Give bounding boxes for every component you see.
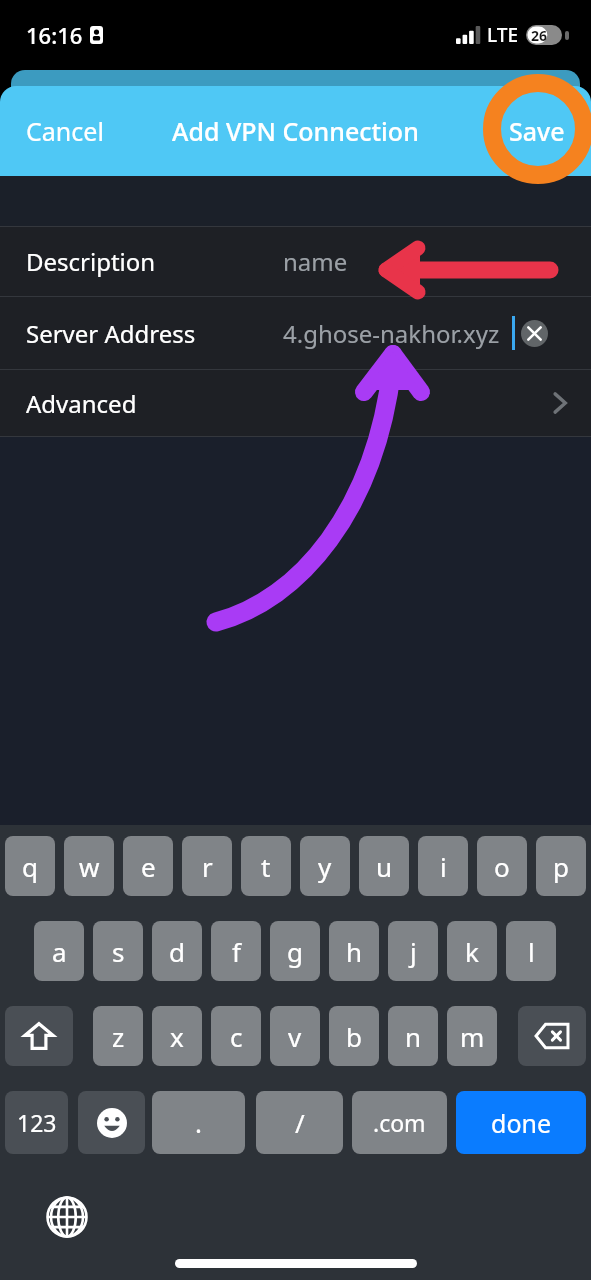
button[interactable]: p [536,836,586,896]
staticText: z [112,1019,125,1054]
staticText: Add VPN Connection [172,114,419,148]
button[interactable]: f [211,921,261,981]
staticText: u [376,849,393,884]
button[interactable]: g [270,921,320,981]
staticText: s [112,934,125,969]
button[interactable]: u [359,836,409,896]
staticText: d [169,934,185,969]
staticText: l [528,934,535,969]
staticText: f [232,934,241,969]
button[interactable]: y [300,836,350,896]
staticText: j [410,934,417,969]
button[interactable]: done [456,1091,586,1154]
button[interactable]: t [241,836,291,896]
button[interactable]: r [182,836,232,896]
button[interactable]: h [329,921,379,981]
staticText: t [261,849,271,884]
staticText: 4.ghose-nakhor.xyz [283,317,500,350]
button[interactable]: x [152,1006,202,1066]
button[interactable]: j [388,921,438,981]
staticText: v [288,1019,302,1054]
button[interactable]: . [152,1091,245,1154]
staticText: x [170,1019,184,1054]
button[interactable]: Backspace [518,1006,586,1066]
staticText: q [22,849,38,884]
button[interactable]: m [447,1006,497,1066]
button[interactable]: Emoji [78,1091,145,1154]
staticText: 123 [17,1107,57,1138]
staticText: Description [26,245,156,278]
staticText: Server Address [26,317,196,350]
button[interactable]: i [418,836,468,896]
button[interactable]: e [123,836,173,896]
staticText: Cancel [26,114,104,148]
staticText: 16:16 [26,20,83,50]
button[interactable]: a [34,921,84,981]
button[interactable]: Server Address [0,297,591,369]
staticText: i [440,849,447,884]
button[interactable]: n [388,1006,438,1066]
staticText: a [52,934,67,969]
staticText: w [79,849,100,884]
button[interactable]: Clear text [521,320,548,347]
staticText: p [553,849,569,884]
staticText: .com [373,1107,426,1138]
staticText: m [460,1019,485,1054]
button[interactable]: Shift [5,1006,73,1066]
button[interactable]: s [93,921,143,981]
staticText: k [465,934,479,969]
button[interactable]: k [447,921,497,981]
button[interactable]: l [506,921,556,981]
button[interactable]: Description [0,227,591,296]
staticText: / [295,1105,305,1140]
button[interactable]: 123 [5,1091,68,1154]
staticText: g [287,934,303,969]
button[interactable]: z [93,1006,143,1066]
button[interactable]: Cancel [8,104,122,158]
staticText: y [318,849,332,884]
staticText: . [195,1105,202,1140]
button[interactable]: .com [352,1091,447,1154]
button[interactable]: Save [493,104,581,158]
staticText: b [346,1019,362,1054]
staticText: c [230,1019,243,1054]
button[interactable]: Advanced [0,370,591,436]
staticText: e [141,849,156,884]
staticText: LTE [487,22,519,48]
button[interactable]: v [270,1006,320,1066]
button[interactable]: b [329,1006,379,1066]
button[interactable]: q [5,836,55,896]
staticText: 26 [531,26,548,45]
staticText: name [283,245,348,278]
button[interactable]: Change keyboard [42,1192,92,1242]
staticText: o [494,849,510,884]
staticText: Save [509,114,565,148]
button[interactable]: w [64,836,114,896]
staticText: Advanced [26,387,137,420]
button[interactable]: d [152,921,202,981]
button[interactable]: o [477,836,527,896]
button[interactable]: / [256,1091,343,1154]
staticText: h [346,934,363,969]
staticText: n [405,1019,422,1054]
button[interactable]: c [211,1006,261,1066]
staticText: done [491,1106,552,1140]
staticText: r [202,849,213,884]
